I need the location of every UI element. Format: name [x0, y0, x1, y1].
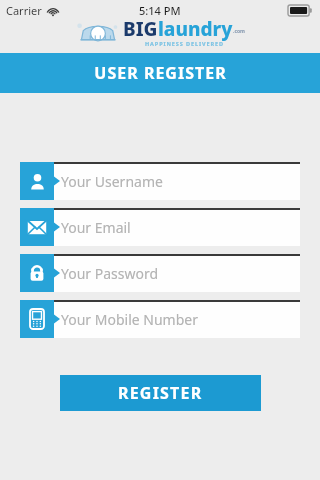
button[interactable]: REGISTER [60, 375, 261, 411]
staticText: Carrier [6, 3, 42, 18]
staticText: REGISTER [118, 382, 203, 404]
staticText: .com [233, 28, 245, 35]
button[interactable]: Your Password [20, 254, 300, 292]
staticText: BIG [123, 16, 158, 42]
staticText: USER REGISTER [94, 62, 227, 84]
button[interactable]: Your Username [20, 162, 300, 200]
staticText: laundry [158, 16, 233, 42]
staticText: Your Username [61, 172, 163, 191]
staticText: Your Password [61, 264, 159, 283]
staticText: HAPPINESS DELIVERED [145, 40, 224, 47]
button[interactable]: Your Mobile Number [20, 300, 300, 338]
button[interactable]: Your Email [20, 208, 300, 246]
staticText: Your Email [61, 218, 131, 237]
staticText: Your Mobile Number [61, 310, 198, 329]
staticText: 5:14 PM [139, 3, 181, 18]
